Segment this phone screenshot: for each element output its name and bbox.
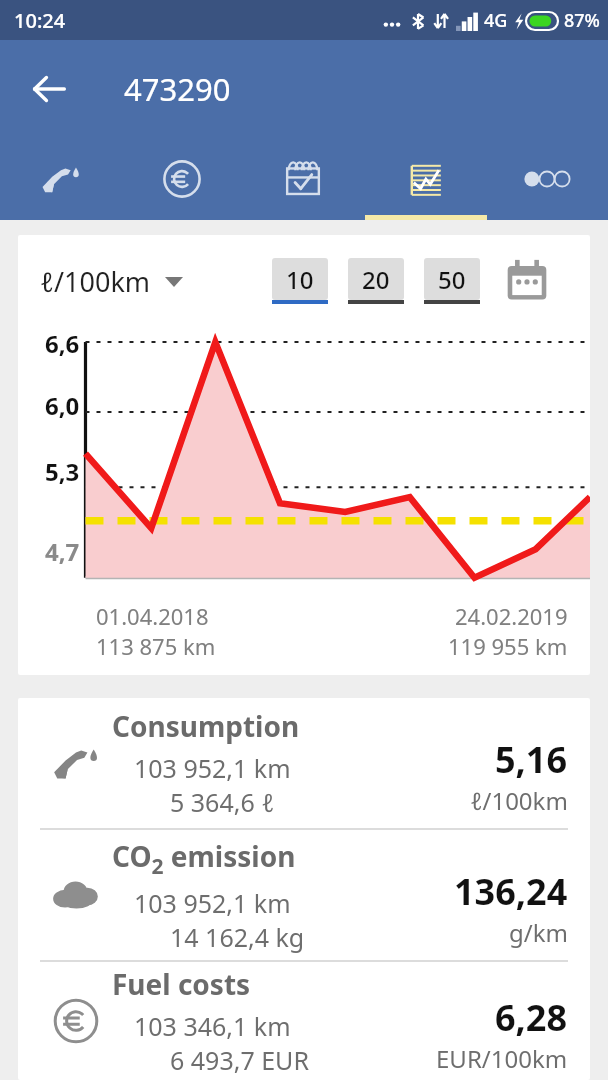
button[interactable]: Statistics bbox=[364, 138, 486, 220]
staticText: 103 346,1 km bbox=[134, 1009, 291, 1043]
button[interactable]: 10 bbox=[272, 258, 328, 304]
button[interactable]: Fuel bbox=[0, 138, 121, 220]
button[interactable]: Back bbox=[20, 60, 78, 118]
staticText: 5,3 bbox=[45, 455, 80, 488]
button[interactable]: 20 bbox=[348, 258, 404, 304]
staticText: 103 952,1 km bbox=[134, 886, 291, 920]
staticText: 4,7 bbox=[45, 535, 80, 568]
staticText: ℓ/100km bbox=[470, 784, 568, 817]
staticText: EUR/100km bbox=[436, 1042, 568, 1075]
staticText: 6 493,7 EUR bbox=[170, 1043, 309, 1077]
staticText: 24.02.2019 bbox=[455, 601, 568, 631]
button[interactable]: Consumption bbox=[18, 698, 590, 828]
staticText: 6,28 bbox=[495, 993, 568, 1042]
staticText: 103 952,1 km bbox=[134, 751, 291, 785]
staticText: g/km bbox=[509, 916, 568, 949]
staticText: 87% bbox=[564, 8, 600, 33]
button[interactable]: Pick date range bbox=[502, 258, 552, 304]
staticText: Fuel costs bbox=[112, 965, 251, 1003]
staticText: 113 875 km bbox=[96, 631, 216, 661]
button[interactable]: Costs bbox=[121, 138, 242, 220]
button[interactable]: CO2 emission bbox=[18, 830, 590, 960]
button[interactable]: ℓ/100km bbox=[40, 263, 183, 300]
staticText: 119 955 km bbox=[448, 631, 568, 661]
staticText: 01.04.2018 bbox=[96, 601, 209, 631]
staticText: 10:24 bbox=[14, 7, 66, 34]
staticText: 5 364,6 ℓ bbox=[170, 785, 275, 819]
staticText: 10 bbox=[286, 263, 314, 296]
staticText: 473290 bbox=[124, 68, 231, 110]
staticText: 4G bbox=[484, 8, 508, 33]
staticText: Consumption bbox=[112, 707, 300, 745]
button[interactable]: 50 bbox=[424, 258, 480, 304]
staticText: 6,6 bbox=[45, 327, 80, 360]
button[interactable]: Calendar bbox=[242, 138, 364, 220]
staticText: 5,16 bbox=[495, 735, 568, 784]
staticText: 136,24 bbox=[454, 867, 568, 916]
staticText: 50 bbox=[438, 263, 466, 296]
staticText: 20 bbox=[362, 263, 390, 296]
button[interactable]: Fuel costs bbox=[18, 962, 590, 1080]
staticText: CO2 emission bbox=[112, 837, 296, 880]
button[interactable]: More bbox=[486, 138, 608, 220]
staticText: 6,0 bbox=[45, 389, 80, 422]
staticText: ℓ/100km bbox=[40, 263, 151, 300]
staticText: 14 162,4 kg bbox=[170, 920, 305, 954]
